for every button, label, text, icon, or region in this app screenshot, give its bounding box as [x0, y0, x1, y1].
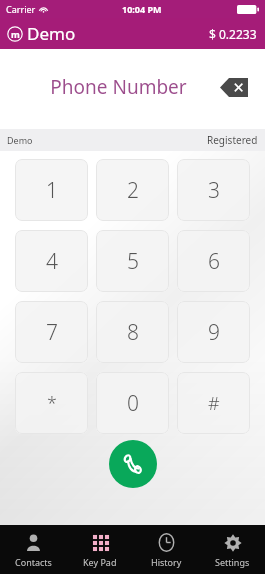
- button[interactable]: Key Pad: [67, 525, 133, 574]
- button[interactable]: #: [177, 372, 250, 434]
- staticText: 0: [127, 389, 139, 418]
- staticText: 8: [127, 318, 139, 347]
- staticText: #: [208, 391, 220, 416]
- staticText: Contacts: [15, 556, 52, 568]
- button[interactable]: 2: [96, 159, 169, 221]
- staticText: $ 0.2233: [209, 26, 257, 42]
- staticText: 1: [46, 176, 58, 205]
- staticText: 4: [46, 247, 58, 276]
- button[interactable]: 0: [96, 372, 169, 434]
- staticText: Phone Number: [20, 74, 217, 100]
- staticText: m: [11, 28, 20, 40]
- staticText: 10:04 PM: [122, 3, 162, 15]
- button[interactable]: 4: [15, 230, 88, 292]
- staticText: Registered: [207, 133, 258, 147]
- staticText: 6: [208, 247, 220, 276]
- button[interactable]: *: [15, 372, 88, 434]
- button[interactable]: 9: [177, 301, 250, 363]
- staticText: *: [47, 391, 57, 416]
- staticText: 7: [46, 318, 58, 347]
- staticText: 2: [127, 176, 139, 205]
- staticText: History: [151, 556, 182, 568]
- button[interactable]: Call: [109, 440, 157, 488]
- staticText: 3: [208, 176, 220, 205]
- staticText: Key Pad: [83, 556, 117, 568]
- button[interactable]: 3: [177, 159, 250, 221]
- button[interactable]: Contacts: [0, 525, 67, 574]
- button[interactable]: 6: [177, 230, 250, 292]
- button[interactable]: 7: [15, 301, 88, 363]
- staticText: 9: [208, 318, 220, 347]
- button[interactable]: 8: [96, 301, 169, 363]
- button[interactable]: Settings: [199, 525, 265, 574]
- staticText: Demo: [7, 134, 33, 146]
- button[interactable]: 5: [96, 230, 169, 292]
- button[interactable]: Backspace: [219, 77, 251, 98]
- staticText: Demo: [27, 22, 76, 45]
- staticText: Settings: [215, 556, 250, 568]
- staticText: 5: [127, 247, 139, 276]
- staticText: Carrier: [6, 3, 36, 15]
- button[interactable]: History: [133, 525, 199, 574]
- button[interactable]: 1: [15, 159, 88, 221]
